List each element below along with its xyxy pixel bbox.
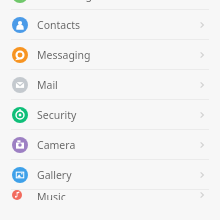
button[interactable]: Messaging bbox=[0, 40, 220, 69]
staticText: Contacts bbox=[37, 18, 81, 32]
button[interactable]: Mail bbox=[0, 70, 220, 99]
button[interactable]: Music bbox=[0, 190, 220, 200]
staticText: Mail bbox=[37, 78, 58, 92]
staticText: Messaging bbox=[37, 48, 91, 62]
staticText: Gallery bbox=[37, 168, 72, 182]
button[interactable]: Camera bbox=[0, 130, 220, 159]
staticText: Security bbox=[37, 108, 77, 122]
staticText: Camera bbox=[37, 138, 76, 152]
other: Security bbox=[193, 106, 211, 124]
button[interactable]: Security bbox=[0, 100, 220, 129]
other: Camera bbox=[193, 136, 211, 154]
other: Gallery bbox=[193, 166, 211, 184]
staticText: Call settings bbox=[37, 0, 97, 2]
staticText: Music bbox=[37, 190, 66, 200]
other: Contacts bbox=[193, 16, 211, 34]
other: Mail bbox=[193, 76, 211, 94]
button[interactable]: Contacts bbox=[0, 10, 220, 39]
other: Music bbox=[193, 190, 211, 200]
button[interactable]: Call settings bbox=[0, 0, 220, 9]
other: Messaging bbox=[193, 46, 211, 64]
button[interactable]: Gallery bbox=[0, 160, 220, 189]
